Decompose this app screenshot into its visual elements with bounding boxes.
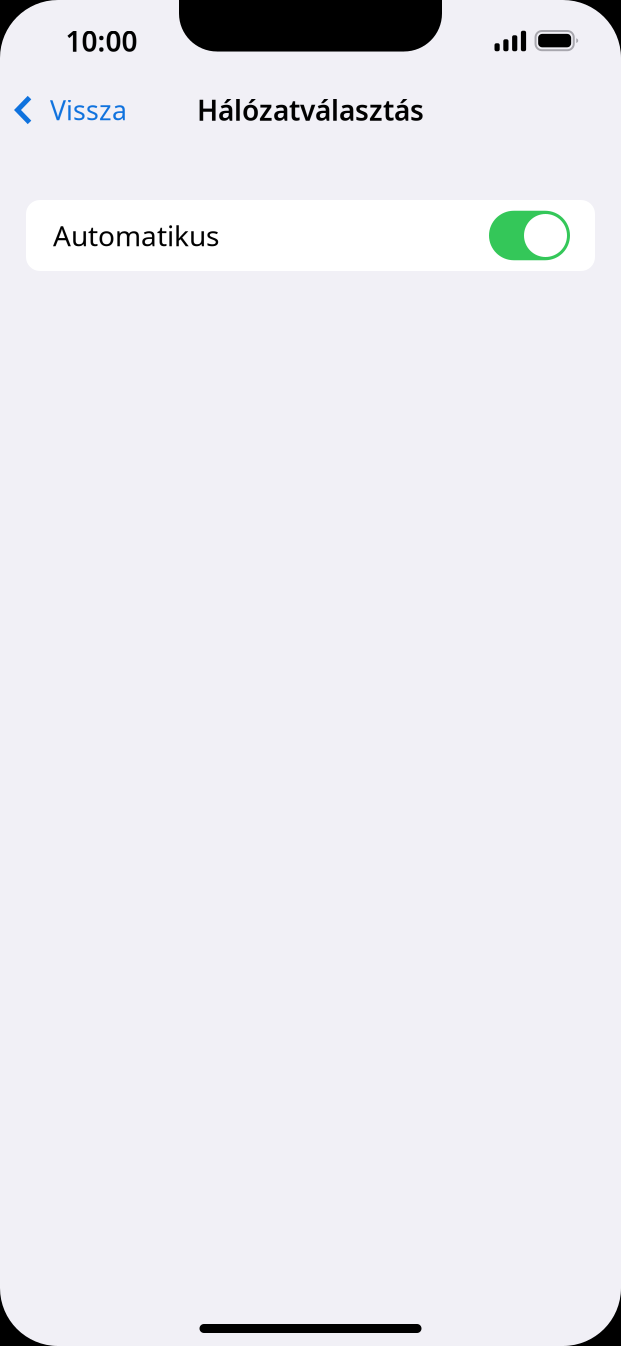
button[interactable]: Automatikus bbox=[489, 211, 570, 260]
staticText: Hálózatválasztás bbox=[197, 91, 424, 129]
staticText: Automatikus bbox=[53, 217, 219, 254]
staticText: Vissza bbox=[50, 92, 127, 128]
staticText: 10:00 bbox=[65, 22, 137, 60]
button[interactable]: Vissza bbox=[0, 82, 141, 138]
button[interactable]: Automatikus bbox=[26, 200, 595, 271]
